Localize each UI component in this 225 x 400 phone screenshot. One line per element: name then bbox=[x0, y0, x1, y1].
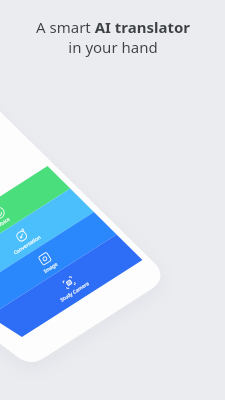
button[interactable]: Conversation bbox=[10, 222, 80, 252]
staticText: in your hand bbox=[68, 37, 158, 57]
staticText: A smart AI translator bbox=[36, 17, 190, 37]
button[interactable]: Study Camera bbox=[46, 292, 132, 322]
button[interactable]: Image bbox=[26, 258, 104, 288]
button[interactable]: Voice bbox=[0, 186, 58, 216]
